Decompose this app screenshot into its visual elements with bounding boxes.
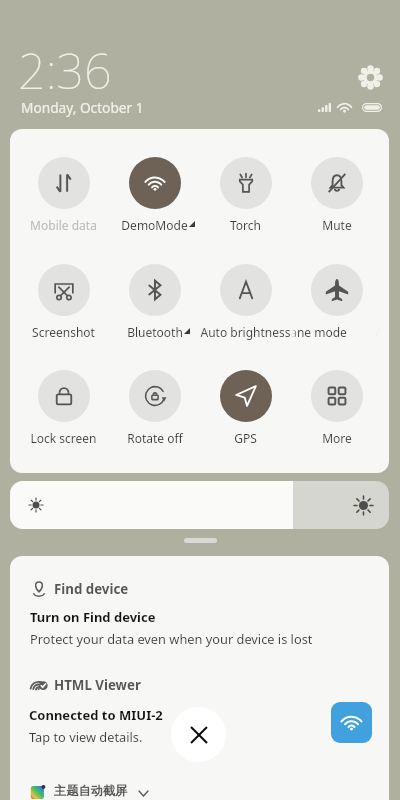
button[interactable] xyxy=(109,342,200,447)
staticText: More xyxy=(322,430,352,446)
button[interactable] xyxy=(109,129,200,235)
staticText: 主题自动截屏 xyxy=(54,783,128,798)
staticText: Airplane mode xyxy=(291,324,347,340)
staticText: Bluetooth xyxy=(127,324,183,340)
button[interactable]: 主题自动截屏 xyxy=(10,762,389,800)
button[interactable] xyxy=(291,236,382,342)
staticText: Tap to view details. xyxy=(29,728,143,745)
button[interactable]: HTML Viewer xyxy=(10,658,389,762)
button[interactable]: Wi-Fi xyxy=(331,702,372,743)
button[interactable] xyxy=(200,129,291,235)
staticText: DemoMode xyxy=(121,217,188,233)
button[interactable] xyxy=(291,342,382,447)
button[interactable] xyxy=(291,129,382,235)
button[interactable] xyxy=(200,236,291,342)
staticText: Connected to MIUI-2 xyxy=(29,706,163,724)
staticText: HTML Viewer xyxy=(54,676,141,694)
staticText: Find device xyxy=(54,580,129,598)
staticText: Mute xyxy=(322,217,352,233)
staticText: Mobile data xyxy=(30,217,97,233)
staticText: Torch xyxy=(230,217,261,233)
button[interactable]: Find device xyxy=(10,556,389,658)
staticText: Auto brightness xyxy=(200,324,291,340)
staticText: Monday, October 1 xyxy=(21,98,144,117)
button[interactable]: Settings xyxy=(360,67,381,88)
button[interactable] xyxy=(18,236,109,342)
staticText: GPS xyxy=(234,430,257,446)
button[interactable] xyxy=(109,236,200,342)
staticText: Protect your data even when your device … xyxy=(30,630,313,647)
staticText: Rotate off xyxy=(127,430,183,446)
button[interactable] xyxy=(200,342,291,447)
staticText: Lock screen xyxy=(30,430,97,446)
button[interactable] xyxy=(18,342,109,447)
button[interactable]: Brightness xyxy=(10,481,389,529)
staticText: 2:36 xyxy=(18,37,112,103)
button[interactable] xyxy=(18,129,109,235)
button[interactable]: Close xyxy=(171,707,226,762)
staticText: Screenshot xyxy=(32,324,95,340)
staticText: Turn on Find device xyxy=(30,608,156,626)
